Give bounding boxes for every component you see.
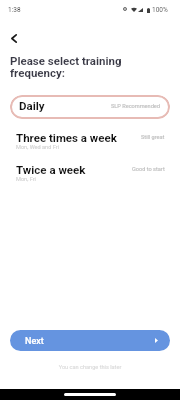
button[interactable]: Twice a week <box>0 163 180 185</box>
button[interactable]: Daily <box>10 95 170 119</box>
button[interactable]: Next <box>10 330 170 351</box>
staticText: 1:38 <box>8 6 21 14</box>
staticText: Still great <box>141 134 165 141</box>
staticText: Next <box>25 336 44 347</box>
staticText: You can change this later <box>0 364 180 371</box>
staticText: Twice a week <box>16 163 86 176</box>
staticText: Daily <box>19 99 45 112</box>
staticText: SLP Recommended <box>111 103 160 110</box>
staticText: 100% <box>152 6 168 14</box>
staticText: Three times a week <box>16 131 117 144</box>
staticText: Mon, Wed and Fri <box>16 144 59 151</box>
button[interactable]: Back <box>5 29 22 46</box>
staticText: Good to start <box>132 166 165 173</box>
staticText: Please select training frequency: <box>10 54 122 80</box>
button[interactable]: Three times a week <box>0 131 180 153</box>
staticText: Mon, Fri <box>16 176 36 183</box>
